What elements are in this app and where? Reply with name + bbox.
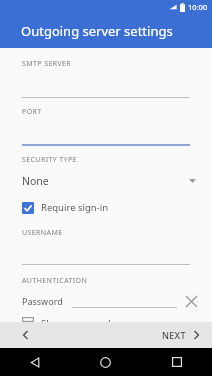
staticText: 10:00: [188, 2, 208, 12]
staticText: NEXT: [162, 329, 186, 341]
staticText: AUTHENTICATION: [22, 276, 88, 286]
staticText: Show password: [41, 317, 111, 322]
staticText: SMTP SERVER: [22, 59, 72, 69]
button[interactable]: [22, 134, 190, 146]
staticText: Outgoing server settings: [21, 22, 173, 40]
button[interactable]: [22, 255, 190, 265]
staticText: None: [22, 174, 49, 188]
button[interactable]: NEXT: [162, 322, 199, 348]
button[interactable]: Back: [0, 348, 70, 376]
button[interactable]: None: [22, 173, 196, 189]
button[interactable]: Home: [70, 348, 141, 376]
button[interactable]: Previous: [0, 322, 50, 348]
staticText: Password: [22, 295, 63, 307]
button[interactable]: Require sign-in: [22, 201, 109, 214]
button[interactable]: [72, 294, 177, 308]
staticText: Require sign-in: [41, 201, 109, 214]
staticText: USERNAME: [22, 228, 63, 238]
button[interactable]: Clear password: [183, 293, 199, 309]
staticText: SECURITY TYPE: [22, 155, 77, 165]
staticText: PORT: [22, 107, 42, 117]
button[interactable]: Show password: [22, 317, 111, 322]
button[interactable]: [22, 86, 190, 98]
button[interactable]: Recent apps: [141, 348, 212, 376]
